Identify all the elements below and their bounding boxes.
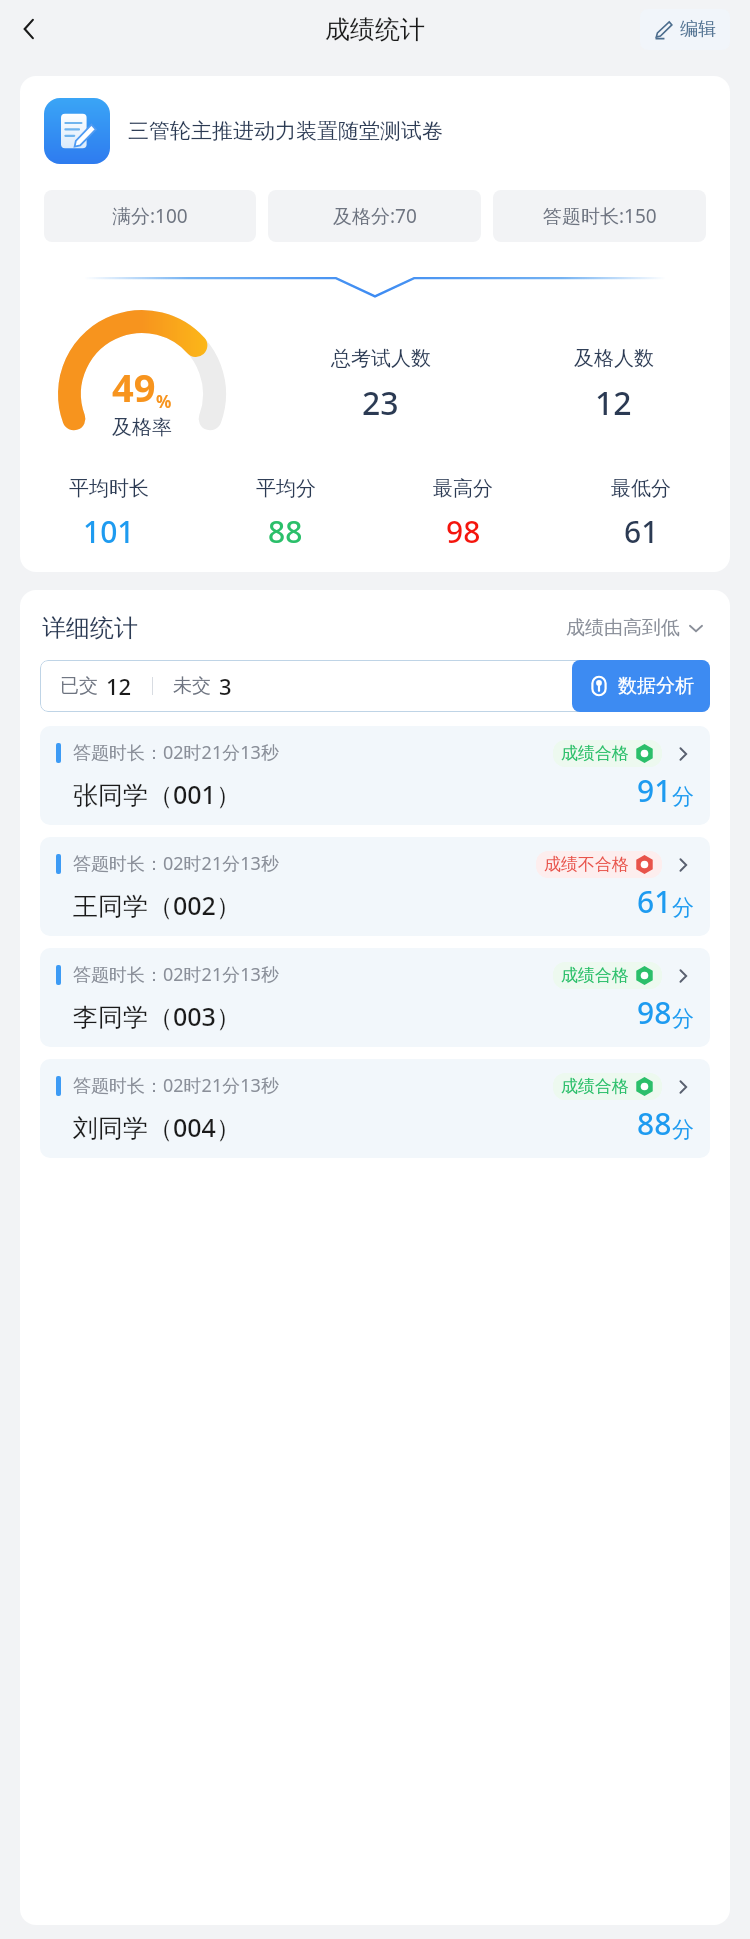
staticText: 3 — [219, 671, 232, 701]
button[interactable]: 已交 — [40, 660, 710, 712]
button[interactable]: 满分:100 — [44, 190, 256, 242]
staticText: 答题时长：02时21分13秒 — [73, 740, 279, 765]
other: Details — [672, 1076, 694, 1098]
button[interactable]: 答题时长：02时21分13秒 — [40, 948, 710, 1047]
staticText: 98 — [446, 511, 481, 552]
button[interactable]: 答题时长：02时21分13秒 — [40, 837, 710, 936]
staticText: 成绩不合格 — [544, 854, 629, 875]
staticText: 91 — [637, 770, 672, 811]
staticText: 49 — [112, 361, 156, 413]
staticText: 61 — [637, 881, 672, 922]
staticText: 12 — [595, 381, 632, 425]
staticText: % — [156, 390, 172, 413]
staticText: 及格率 — [112, 415, 172, 440]
staticText: 61 — [624, 511, 659, 552]
staticText: 详细统计 — [42, 613, 138, 643]
staticText: 及格人数 — [574, 346, 654, 371]
other: Details — [672, 854, 694, 876]
staticText: 答题时长：02时21分13秒 — [73, 962, 279, 987]
staticText: 平均时长 — [69, 476, 149, 501]
staticText: 成绩合格 — [561, 965, 629, 986]
staticText: 总考试人数 — [331, 346, 431, 371]
staticText: 12 — [106, 671, 132, 701]
button[interactable]: 答题时长:150 — [493, 190, 706, 242]
staticText: 未交 — [173, 674, 211, 698]
button[interactable]: 成绩由高到低 — [562, 612, 708, 644]
staticText: 已交 — [60, 674, 98, 698]
staticText: 张同学（001） — [73, 777, 241, 811]
staticText: 答题时长：02时21分13秒 — [73, 1073, 279, 1098]
button[interactable]: 及格分:70 — [268, 190, 481, 242]
staticText: 王同学（002） — [73, 888, 241, 922]
staticText: 答题时长:150 — [543, 203, 657, 229]
staticText: 分 — [672, 1005, 694, 1033]
staticText: 98 — [637, 992, 672, 1033]
staticText: 李同学（003） — [73, 999, 241, 1033]
staticText: 成绩合格 — [561, 743, 629, 764]
staticText: 分 — [672, 894, 694, 922]
staticText: 平均分 — [256, 476, 316, 501]
staticText: 成绩由高到低 — [566, 616, 680, 640]
staticText: 答题时长：02时21分13秒 — [73, 851, 279, 876]
staticText: 成绩合格 — [561, 1076, 629, 1097]
button[interactable]: Back — [6, 6, 52, 52]
button[interactable]: 答题时长：02时21分13秒 — [40, 726, 710, 825]
other: Details — [672, 965, 694, 987]
staticText: 23 — [362, 381, 399, 425]
other: Details — [672, 743, 694, 765]
staticText: 88 — [268, 511, 303, 552]
staticText: 分 — [672, 783, 694, 811]
staticText: 数据分析 — [618, 674, 694, 698]
staticText: 及格分:70 — [333, 203, 417, 229]
staticText: 满分:100 — [112, 203, 188, 229]
button[interactable]: 数据分析 — [572, 660, 710, 712]
staticText: 编辑 — [680, 18, 716, 41]
staticText: 88 — [637, 1103, 672, 1144]
staticText: 101 — [83, 511, 135, 552]
staticText: 三管轮主推进动力装置随堂测试卷 — [128, 118, 443, 144]
button[interactable]: 答题时长：02时21分13秒 — [40, 1059, 710, 1158]
staticText: 最低分 — [611, 476, 671, 501]
staticText: 分 — [672, 1116, 694, 1144]
button[interactable]: 编辑 — [640, 9, 730, 50]
staticText: 最高分 — [433, 476, 493, 501]
staticText: 成绩统计 — [325, 14, 425, 45]
staticText: 刘同学（004） — [73, 1110, 241, 1144]
